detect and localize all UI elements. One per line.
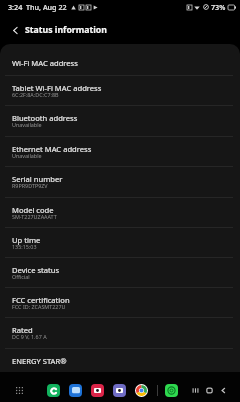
staticText: Status information bbox=[25, 24, 107, 36]
staticText: 73% bbox=[211, 2, 226, 12]
staticText: FCC ID: ZCASMT227U bbox=[12, 303, 66, 310]
staticText: SM-T227UZAAATT bbox=[12, 213, 57, 220]
button[interactable]: Ethernet MAC address bbox=[0, 137, 240, 166]
button[interactable]: Wi-Fi MAC address bbox=[0, 51, 240, 75]
staticText: R9PR9DTP9ZV bbox=[12, 182, 48, 189]
button[interactable]: Bluetooth address bbox=[0, 106, 240, 136]
staticText: FCC certification bbox=[12, 295, 70, 305]
staticText: Official bbox=[12, 273, 30, 280]
button[interactable]: App bbox=[91, 384, 104, 397]
staticText: 135:15:03 bbox=[12, 243, 37, 250]
staticText: 6C:2F:8A:DC:C7:8B bbox=[12, 91, 59, 98]
button[interactable]: App bbox=[165, 384, 178, 397]
staticText: Serial number bbox=[12, 174, 63, 184]
staticText: Bluetooth address bbox=[12, 113, 78, 123]
button[interactable]: Messages bbox=[69, 384, 82, 397]
staticText: Wi-Fi MAC address bbox=[12, 58, 78, 68]
button[interactable]: FCC certification bbox=[0, 288, 240, 317]
staticText: Thu, Aug 22 bbox=[26, 2, 67, 12]
staticText: Unavailable bbox=[12, 152, 42, 159]
button[interactable]: App bbox=[113, 384, 126, 397]
staticText: Tablet Wi-Fi MAC address bbox=[12, 83, 102, 93]
staticText: Rated bbox=[12, 325, 33, 335]
staticText: Ethernet MAC address bbox=[12, 144, 92, 154]
staticText: Unavailable bbox=[12, 121, 42, 128]
staticText: Device status bbox=[12, 265, 60, 275]
staticText: Up time bbox=[12, 235, 41, 245]
button[interactable]: Home bbox=[204, 385, 215, 396]
button[interactable]: Device status bbox=[0, 258, 240, 287]
button[interactable]: ENERGY STAR® bbox=[0, 349, 240, 372]
staticText: 3:24 bbox=[8, 2, 23, 12]
button[interactable]: Apps bbox=[13, 384, 25, 396]
button[interactable]: Phone bbox=[47, 384, 60, 397]
button[interactable]: Back bbox=[6, 21, 24, 39]
staticText: DC 9 V, 1.67 A bbox=[12, 333, 47, 340]
staticText: ENERGY STAR® bbox=[12, 356, 67, 366]
button[interactable]: Up time bbox=[0, 228, 240, 257]
button[interactable]: Back bbox=[218, 385, 229, 396]
button[interactable]: Model code bbox=[0, 198, 240, 227]
button[interactable]: Rated bbox=[0, 318, 240, 348]
button[interactable]: Tablet Wi-Fi MAC address bbox=[0, 76, 240, 105]
staticText: Model code bbox=[12, 205, 54, 215]
button[interactable]: Recent apps bbox=[190, 385, 201, 396]
button[interactable]: Chrome bbox=[135, 384, 148, 397]
button[interactable]: Serial number bbox=[0, 167, 240, 197]
